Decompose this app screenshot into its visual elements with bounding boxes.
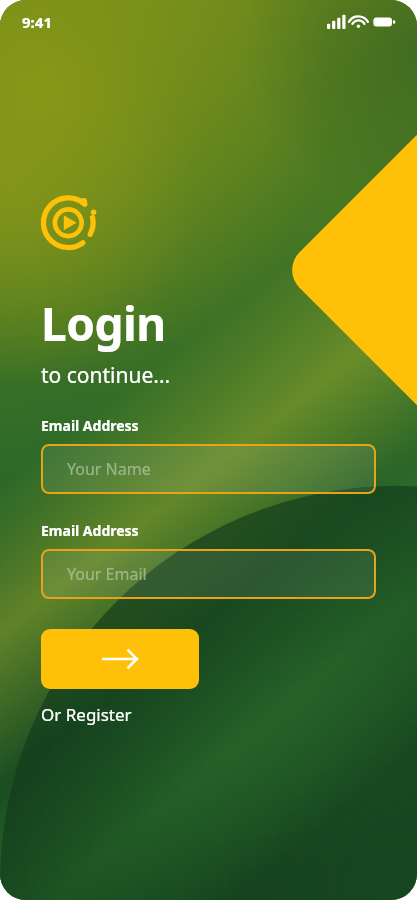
button[interactable]: Or Register <box>41 703 132 726</box>
button[interactable]: Your Name <box>41 444 376 494</box>
staticText: to continue... <box>41 361 171 390</box>
staticText: Email Address <box>41 521 139 540</box>
staticText: Your Name <box>67 458 151 480</box>
staticText: Login <box>41 292 166 355</box>
button[interactable]: Your Email <box>41 549 376 599</box>
staticText: Your Email <box>67 563 147 585</box>
staticText: Or Register <box>41 703 132 726</box>
staticText: 9:41 <box>22 12 52 32</box>
staticText: Email Address <box>41 416 139 435</box>
button[interactable]: Continue <box>41 629 199 689</box>
